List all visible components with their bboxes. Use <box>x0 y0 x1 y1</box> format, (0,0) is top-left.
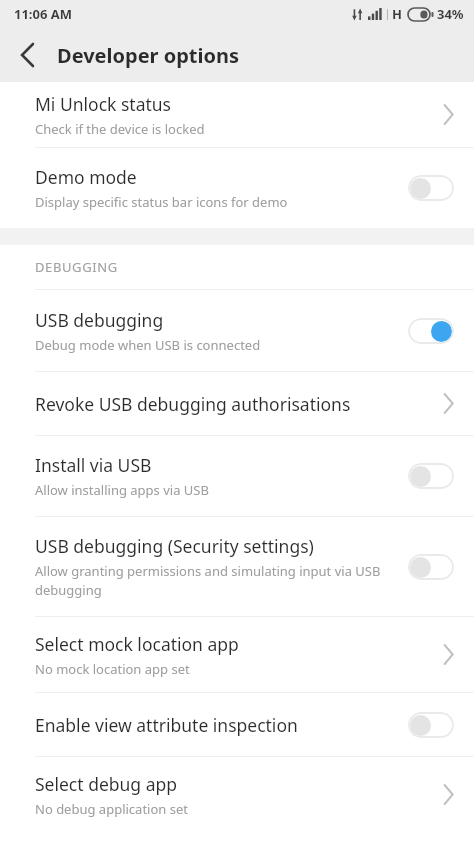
button[interactable]: Revoke USB debugging authorisations <box>0 372 474 435</box>
staticText: 34% <box>437 5 464 23</box>
staticText: Select debug app <box>35 772 177 796</box>
button[interactable]: Select debug app <box>0 757 474 832</box>
button[interactable]: Back <box>0 28 54 82</box>
button[interactable]: Mi Unlock status <box>0 82 474 147</box>
staticText: Demo mode <box>35 165 137 189</box>
staticText: Allow granting permissions and simulatin… <box>35 562 398 599</box>
staticText: Debug mode when USB is connected <box>35 336 261 354</box>
button[interactable]: Select mock location app <box>0 617 474 692</box>
staticText: DEBUGGING <box>35 258 118 276</box>
button[interactable]: USB debugging <box>0 290 474 371</box>
staticText: USB debugging (Security settings) <box>35 534 314 558</box>
staticText: No debug application set <box>35 800 188 818</box>
staticText: Developer options <box>57 42 240 69</box>
staticText: Check if the device is locked <box>35 120 205 138</box>
staticText: Mi Unlock status <box>35 92 171 116</box>
button[interactable]: Enable view attribute inspection <box>0 693 474 756</box>
staticText: Display specific status bar icons for de… <box>35 193 288 211</box>
button[interactable]: Demo mode <box>0 148 474 228</box>
staticText: Install via USB <box>35 453 152 477</box>
button[interactable]: Install via USB <box>0 436 474 516</box>
staticText: Allow installing apps via USB <box>35 481 209 499</box>
staticText: Enable view attribute inspection <box>35 713 298 737</box>
staticText: H <box>392 5 402 23</box>
staticText: Select mock location app <box>35 632 239 656</box>
staticText: No mock location app set <box>35 660 190 678</box>
button[interactable]: USB debugging (Security settings) <box>0 517 474 616</box>
staticText: USB debugging <box>35 308 164 332</box>
staticText: 11:06 AM <box>14 5 73 23</box>
staticText: Revoke USB debugging authorisations <box>35 392 351 416</box>
